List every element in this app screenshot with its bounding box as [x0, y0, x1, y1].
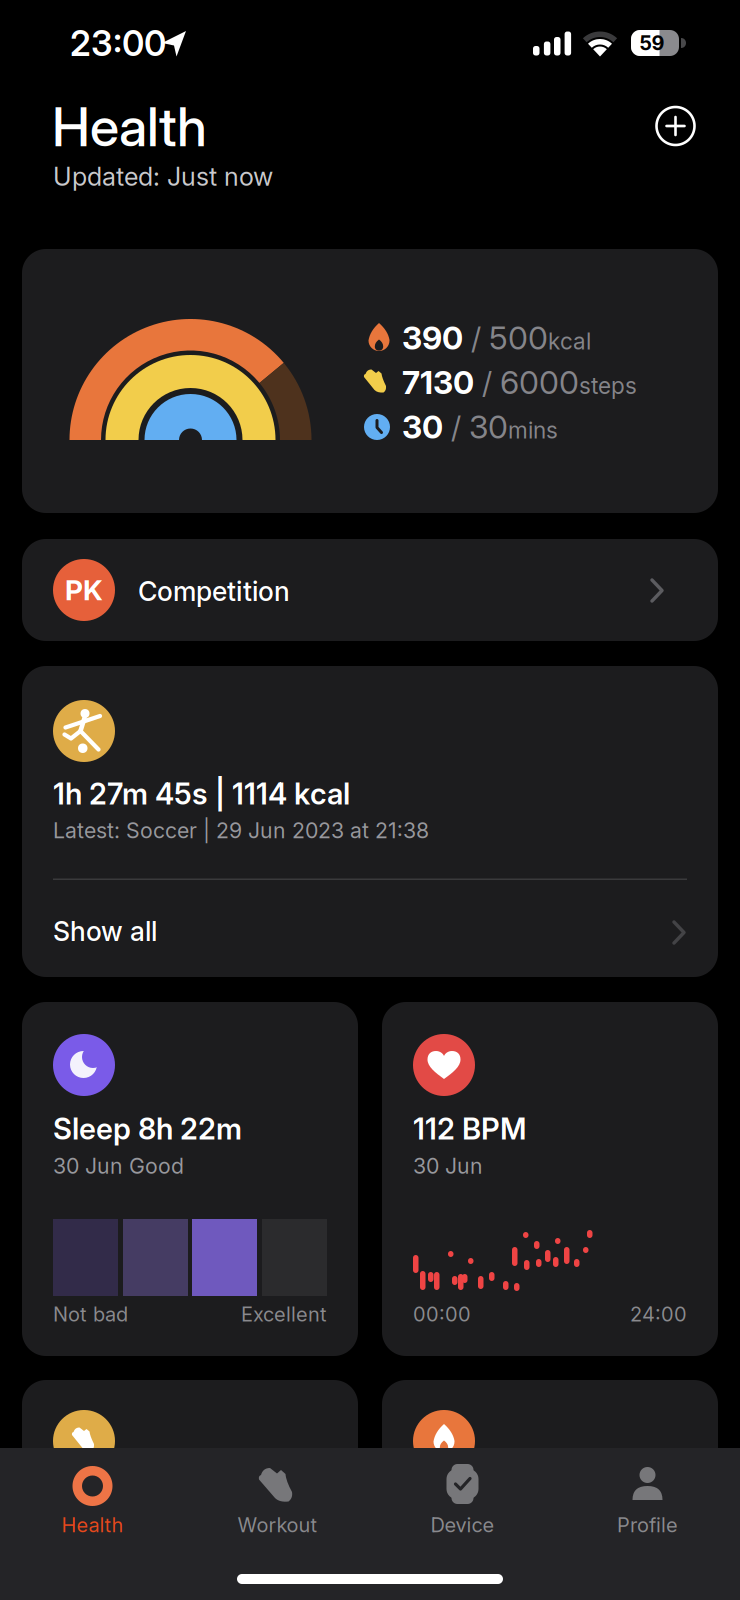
staticText: 6000	[500, 363, 579, 401]
staticText: 1h 27m 45s | 1114 kcal	[53, 776, 350, 811]
staticText: 30	[402, 408, 443, 446]
staticText: /	[443, 410, 469, 445]
button[interactable]: Health	[0, 1448, 740, 1600]
staticText: mins	[508, 417, 558, 444]
button[interactable]: Latest workout	[22, 666, 740, 1600]
staticText: /	[463, 321, 489, 356]
button[interactable]: Workout	[185, 1448, 740, 1600]
button[interactable]: Add	[655, 106, 740, 1600]
staticText: 112 BPM	[413, 1111, 527, 1146]
staticText: /	[474, 366, 500, 401]
staticText: Device	[430, 1513, 494, 1537]
staticText: Health	[52, 94, 207, 159]
staticText: Profile	[617, 1513, 678, 1537]
button[interactable]: Sleep	[22, 1002, 358, 1356]
staticText: 30	[469, 408, 508, 446]
staticText: 390	[402, 319, 463, 357]
button[interactable]: Competition	[22, 539, 740, 1600]
staticText: 24:00	[630, 1302, 687, 1326]
staticText: Health	[61, 1513, 123, 1537]
staticText: Not bad	[53, 1302, 128, 1326]
staticText: Workout	[237, 1513, 317, 1537]
button[interactable]: Show all workouts	[22, 880, 740, 1600]
staticText: Excellent	[241, 1302, 327, 1326]
button[interactable]: Calories	[382, 1380, 740, 1600]
staticText: 7130	[402, 363, 474, 401]
button[interactable]: Profile	[555, 1448, 740, 1600]
staticText: 30 Jun	[413, 1153, 483, 1179]
button[interactable]: Activity	[22, 249, 740, 1600]
staticText: Show all	[53, 915, 157, 947]
staticText: Competition	[138, 575, 290, 607]
staticText: PK	[65, 573, 103, 606]
staticText: steps	[579, 372, 637, 399]
staticText: 500	[489, 319, 548, 357]
button[interactable]: Steps	[22, 1380, 740, 1600]
staticText: 59	[639, 31, 664, 55]
staticText: 23:00	[70, 23, 166, 64]
button[interactable]: Heart rate	[382, 1002, 740, 1600]
staticText: Updated: Just now	[53, 161, 273, 191]
staticText: kcal	[548, 328, 591, 355]
staticText: Latest: Soccer | 29 Jun 2023 at 21:38	[53, 818, 429, 843]
staticText: Sleep 8h 22m	[53, 1111, 242, 1146]
staticText: 00:00	[413, 1302, 471, 1326]
staticText: 30 Jun Good	[53, 1153, 184, 1179]
button[interactable]: Device	[370, 1448, 740, 1600]
